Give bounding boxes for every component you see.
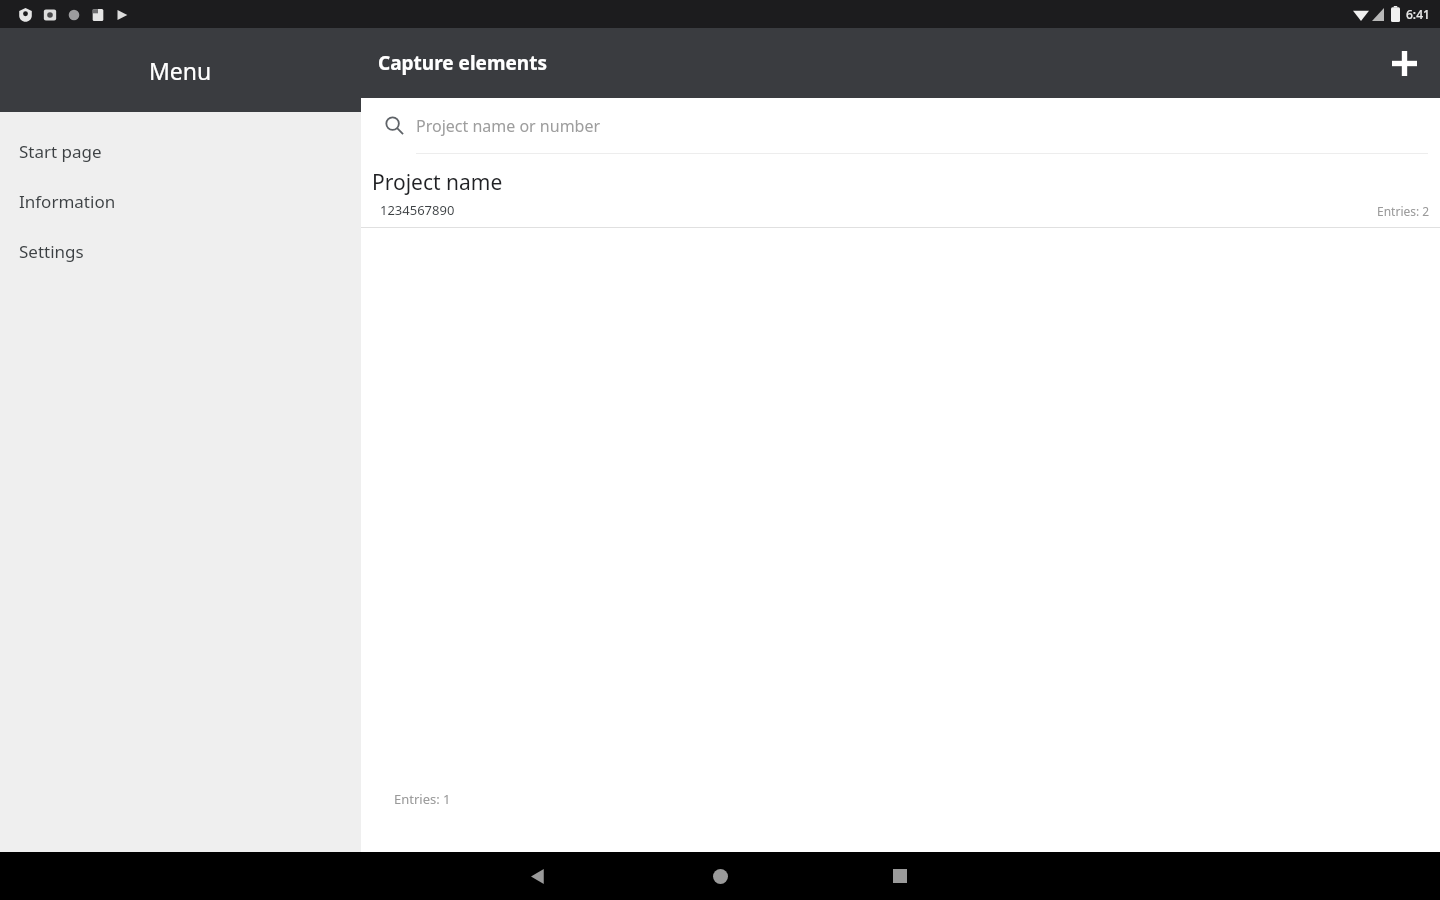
button[interactable]: Back (514, 852, 562, 900)
button[interactable]: Recent apps (876, 852, 924, 900)
button[interactable]: Project name (361, 154, 1440, 228)
button[interactable]: Information (0, 176, 361, 226)
button[interactable]: Project name or number (361, 98, 1440, 153)
button[interactable]: Add (1382, 41, 1426, 85)
staticText: Information (19, 190, 116, 213)
button[interactable]: Home (696, 852, 744, 900)
staticText: Settings (19, 240, 84, 263)
button[interactable]: Settings (0, 226, 361, 276)
staticText: Entries: 2 (1377, 203, 1430, 219)
staticText: Entries: 1 (394, 790, 451, 808)
staticText: Capture elements (378, 50, 547, 76)
button[interactable]: Start page (0, 126, 361, 176)
staticText: Menu (149, 55, 212, 86)
staticText: 1234567890 (380, 201, 455, 219)
staticText: Project name or number (416, 115, 601, 137)
staticText: Project name (372, 168, 503, 197)
staticText: 6:41 (1406, 6, 1430, 22)
staticText: Start page (19, 140, 102, 163)
